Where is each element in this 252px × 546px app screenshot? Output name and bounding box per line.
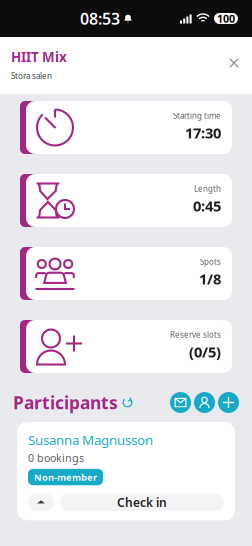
- staticText: Starting time: [173, 110, 221, 121]
- button[interactable]: Spots: [20, 247, 232, 300]
- staticText: 0 bookings: [28, 451, 84, 465]
- staticText: Susanna Magnusson: [28, 431, 153, 449]
- staticText: Spots: [200, 256, 221, 267]
- staticText: 08:53: [80, 8, 120, 29]
- staticText: HIIT Mix: [11, 48, 67, 66]
- button[interactable]: Close: [219, 48, 247, 78]
- button[interactable]: Instructor: [194, 392, 215, 413]
- button[interactable]: Expand: [28, 493, 54, 511]
- staticText: Stora salen: [11, 71, 52, 81]
- staticText: Participants: [13, 391, 118, 414]
- staticText: 100: [217, 11, 235, 26]
- button[interactable]: Length: [20, 174, 232, 227]
- staticText: 0:45: [193, 196, 221, 216]
- button[interactable]: Starting time: [20, 101, 232, 154]
- button[interactable]: Add participant: [218, 392, 239, 413]
- staticText: (0/5): [189, 342, 221, 362]
- staticText: Check in: [117, 494, 167, 510]
- staticText: Reserve slots: [170, 329, 221, 340]
- staticText: 17:30: [185, 123, 221, 143]
- staticText: 1/8: [199, 269, 221, 289]
- button[interactable]: Check in: [60, 493, 224, 511]
- button[interactable]: Message: [170, 392, 191, 413]
- staticText: Length: [194, 183, 221, 194]
- button[interactable]: Reserve slots: [20, 320, 232, 373]
- staticText: Non-member: [34, 471, 97, 483]
